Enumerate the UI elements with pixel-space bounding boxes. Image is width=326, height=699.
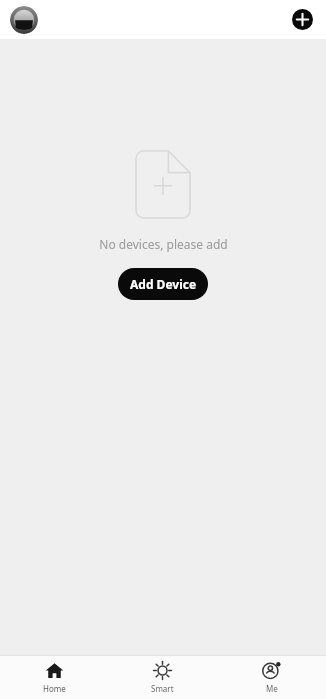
button[interactable]: Smart [108, 656, 217, 699]
staticText: Home [43, 683, 66, 694]
staticText: Smart [151, 683, 174, 694]
button[interactable]: Profile [10, 6, 38, 34]
button[interactable]: Me [217, 656, 326, 699]
button[interactable]: Add [292, 9, 313, 30]
staticText: Me [266, 683, 278, 694]
staticText: Add Device [130, 276, 197, 292]
staticText: No devices, please add [99, 236, 228, 252]
button[interactable]: Home [0, 656, 108, 699]
button[interactable]: Add Device [118, 268, 208, 300]
